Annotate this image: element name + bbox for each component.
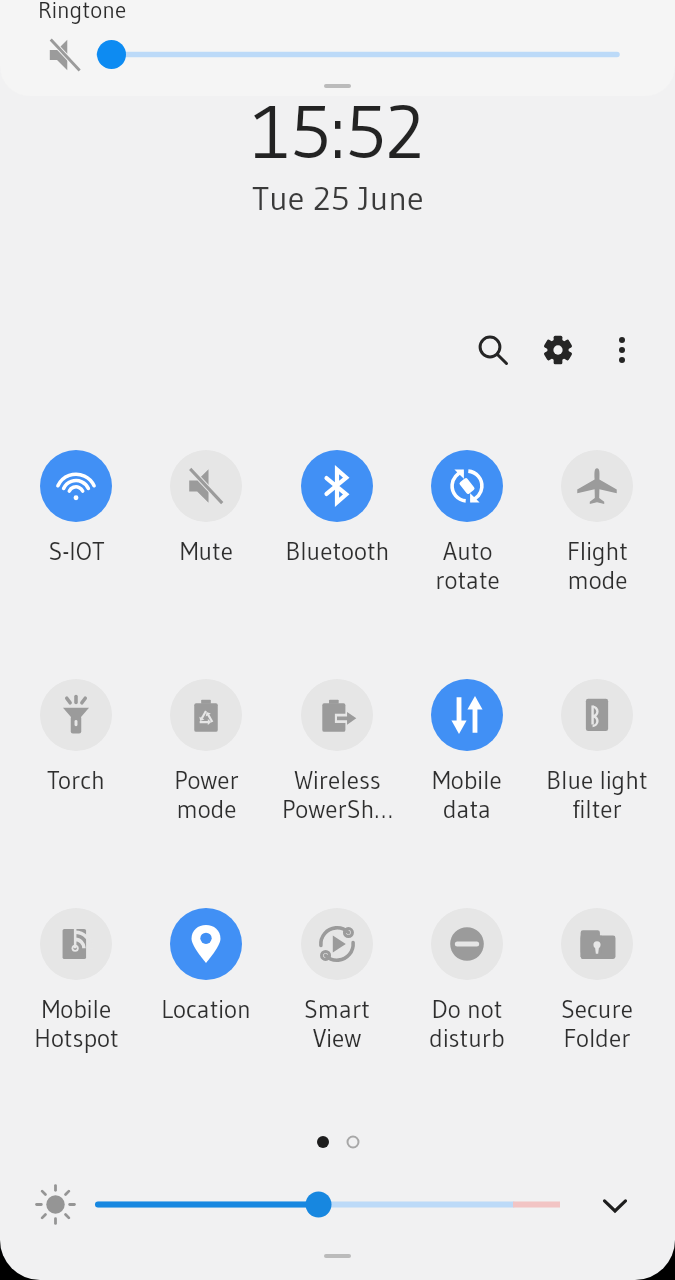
button[interactable]: Smart View bbox=[270, 908, 404, 1053]
button[interactable]: Torch bbox=[9, 679, 143, 796]
button[interactable]: Flight mode bbox=[530, 450, 664, 595]
staticText: Power mode bbox=[174, 765, 239, 824]
button[interactable]: Auto rotate bbox=[400, 450, 534, 595]
button[interactable]: Mute bbox=[139, 450, 273, 567]
button[interactable]: Do not disturb bbox=[400, 908, 534, 1053]
button[interactable]: Blue light filter bbox=[530, 679, 664, 824]
staticText: Do not disturb bbox=[429, 994, 505, 1053]
staticText: Tue 25 June bbox=[252, 177, 424, 219]
button[interactable]: Expand brightness settings bbox=[592, 1182, 637, 1227]
button[interactable]: Settings bbox=[532, 324, 584, 376]
staticText: Mobile Hotspot bbox=[34, 994, 119, 1053]
staticText: 15:52 bbox=[252, 86, 423, 177]
other: Ringtone muted bbox=[46, 36, 84, 74]
button[interactable]: Search bbox=[467, 324, 519, 376]
staticText: Location bbox=[161, 994, 251, 1025]
staticText: Blue light filter bbox=[546, 765, 648, 824]
staticText: Torch bbox=[47, 765, 105, 796]
button[interactable]: More options bbox=[596, 324, 648, 376]
button[interactable]: Mobile data bbox=[400, 679, 534, 824]
button[interactable]: S-IOT bbox=[9, 450, 143, 567]
button[interactable]: Wireless PowerSh… bbox=[270, 679, 404, 824]
staticText: S-IOT bbox=[48, 536, 105, 567]
button[interactable]: Power mode bbox=[139, 679, 273, 824]
other: Brightness bbox=[34, 1183, 77, 1226]
staticText: Wireless PowerSh… bbox=[282, 765, 393, 824]
staticText: Auto rotate bbox=[435, 536, 500, 595]
staticText: Smart View bbox=[304, 994, 370, 1053]
button[interactable]: Secure Folder bbox=[530, 908, 664, 1053]
staticText: Bluetooth bbox=[285, 536, 390, 567]
staticText: Mute bbox=[180, 536, 233, 567]
button[interactable]: Location bbox=[139, 908, 273, 1025]
button[interactable]: Mobile Hotspot bbox=[9, 908, 143, 1053]
staticText: Secure Folder bbox=[561, 994, 633, 1053]
staticText: Ringtone bbox=[38, 0, 127, 24]
button[interactable]: Bluetooth bbox=[270, 450, 404, 567]
staticText: Mobile data bbox=[432, 765, 502, 824]
staticText: Flight mode bbox=[567, 536, 628, 595]
